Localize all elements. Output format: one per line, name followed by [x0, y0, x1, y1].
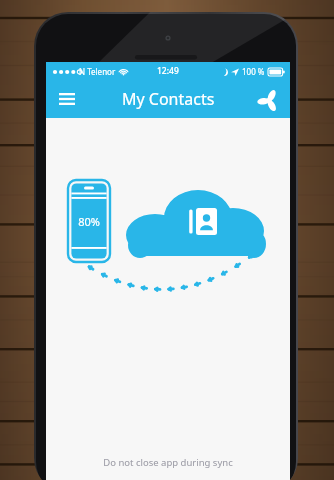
staticText: N Telenor — [79, 66, 116, 77]
staticText: 100 % — [242, 66, 265, 77]
button[interactable]: Open navigation menu — [54, 86, 80, 112]
staticText: 12:49 — [157, 65, 179, 77]
staticText: 80% — [71, 214, 107, 229]
staticText: Do not close app during sync — [46, 456, 290, 469]
staticText: My Contacts — [122, 88, 215, 110]
button[interactable]: Telenor — [252, 82, 286, 116]
